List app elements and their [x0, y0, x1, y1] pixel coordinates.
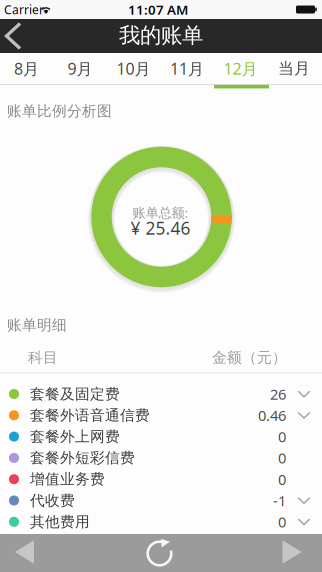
staticText: 科目	[28, 348, 58, 366]
button[interactable]: 当月	[267, 53, 320, 84]
button[interactable]: 12月	[214, 53, 267, 84]
staticText: 26	[270, 384, 286, 404]
staticText: 9月	[67, 58, 92, 79]
staticText: 账单总额:	[132, 204, 188, 221]
button[interactable]: 套餐外上网费	[0, 426, 322, 447]
staticText: 8月	[14, 58, 39, 79]
staticText: 我的账单	[119, 22, 203, 49]
staticText: 0.46	[258, 406, 286, 425]
staticText: -1	[273, 491, 286, 510]
staticText: 账单比例分析图	[7, 102, 112, 120]
staticText: 11:07 AM	[128, 1, 188, 18]
button[interactable]: 套餐外语音通信费	[0, 405, 322, 426]
button[interactable]: 套餐及固定费	[0, 383, 322, 405]
staticText: 12月	[223, 58, 257, 79]
staticText: 0	[278, 469, 286, 489]
button[interactable]: 8月	[0, 53, 53, 84]
button[interactable]: 增值业务费	[0, 469, 322, 490]
button[interactable]: Refresh	[145, 539, 173, 567]
button[interactable]: 10月	[107, 53, 160, 84]
staticText: 当月	[278, 59, 310, 78]
staticText: 代收费	[30, 491, 75, 509]
staticText: 套餐及固定费	[30, 385, 120, 403]
button[interactable]: 其他费用	[0, 511, 322, 532]
staticText: 金额（元）	[212, 348, 287, 366]
staticText: Carrier	[4, 1, 44, 17]
staticText: 10月	[116, 58, 150, 79]
staticText: 0	[278, 512, 286, 532]
staticText: 0	[278, 448, 286, 468]
button[interactable]: 9月	[53, 53, 106, 84]
staticText: 套餐外上网费	[30, 428, 120, 446]
staticText: ¥ 25.46	[130, 216, 190, 239]
button[interactable]: 代收费	[0, 490, 322, 511]
staticText: 11月	[170, 58, 204, 79]
button[interactable]: 11月	[160, 53, 213, 84]
button[interactable]: Back	[2, 19, 32, 52]
button[interactable]: 套餐外短彩信费	[0, 447, 322, 468]
button[interactable]: Previous	[15, 540, 34, 564]
staticText: 0	[278, 427, 286, 446]
staticText: 账单明细	[7, 316, 67, 334]
staticText: 套餐外语音通信费	[30, 406, 150, 424]
staticText: 增值业务费	[30, 470, 105, 488]
staticText: 套餐外短彩信费	[30, 449, 135, 467]
staticText: 其他费用	[30, 513, 90, 531]
button[interactable]: Next	[282, 540, 301, 564]
